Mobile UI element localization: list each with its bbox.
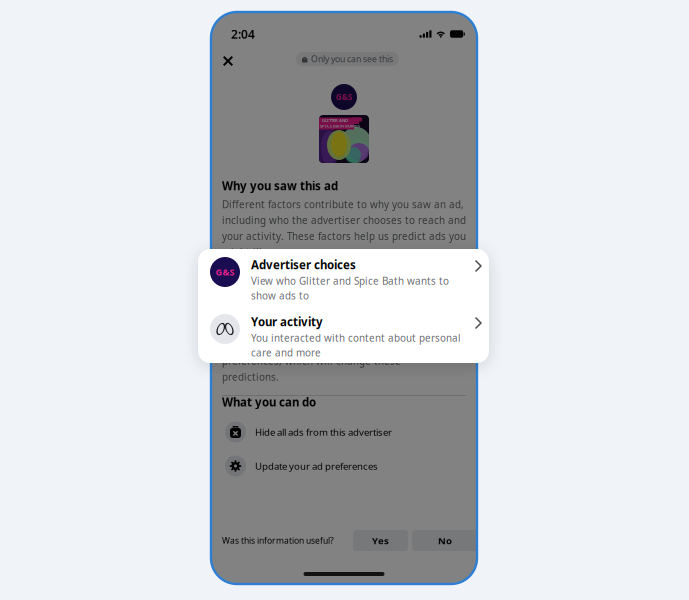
staticText: preferences, which will change these [222,354,401,368]
staticText: predictions. [222,370,279,384]
button[interactable]: No [412,530,478,551]
button[interactable]: G&S [198,249,489,306]
button[interactable]: Update your ad preferences [222,449,466,483]
button[interactable]: Hide all ads from this advertiser [222,415,466,449]
staticText: Why you saw this ad [222,178,338,194]
staticText: Yes [372,534,389,547]
staticText: Hide all ads from this advertiser [255,425,392,439]
staticText: including who the advertiser chooses to … [222,214,466,227]
staticText: your activity. These factors help us pre… [222,229,466,243]
staticText: plus information advertisers share. You … [222,338,464,352]
staticText: good fit. We use what you do on and off … [222,322,462,336]
staticText: Update your ad preferences [255,459,378,473]
button[interactable]: Your activity [198,306,489,363]
staticText: Different factors contribute to why you … [222,198,464,211]
staticText: Only you can see this [311,53,393,65]
button[interactable]: Close [217,50,239,72]
staticText: show ads to [251,289,309,302]
staticText: Was this information useful? [222,535,334,546]
staticText: GLITTER AND [322,118,348,123]
staticText: G&S [336,92,352,102]
staticText: No [438,534,452,547]
staticText: might like. [222,245,273,259]
staticText: SPICE BATH BOMBS [320,123,360,129]
staticText: care and more [251,346,321,359]
staticText: we match campaigns to accounts that look… [222,306,458,320]
staticText: How Instagram uses your information [222,271,437,286]
staticText: G&S [215,266,234,278]
staticText: 2:04 [231,26,255,42]
staticText: What you can do [222,394,316,410]
staticText: Advertisers tell us who they want to rea… [222,290,446,304]
staticText: View who Glitter and Spice Bath wants to [251,274,449,287]
button[interactable]: Yes [353,530,408,551]
staticText: You interacted with content about person… [251,331,461,344]
staticText: Your activity [251,314,323,330]
staticText: Advertiser choices [251,257,356,273]
